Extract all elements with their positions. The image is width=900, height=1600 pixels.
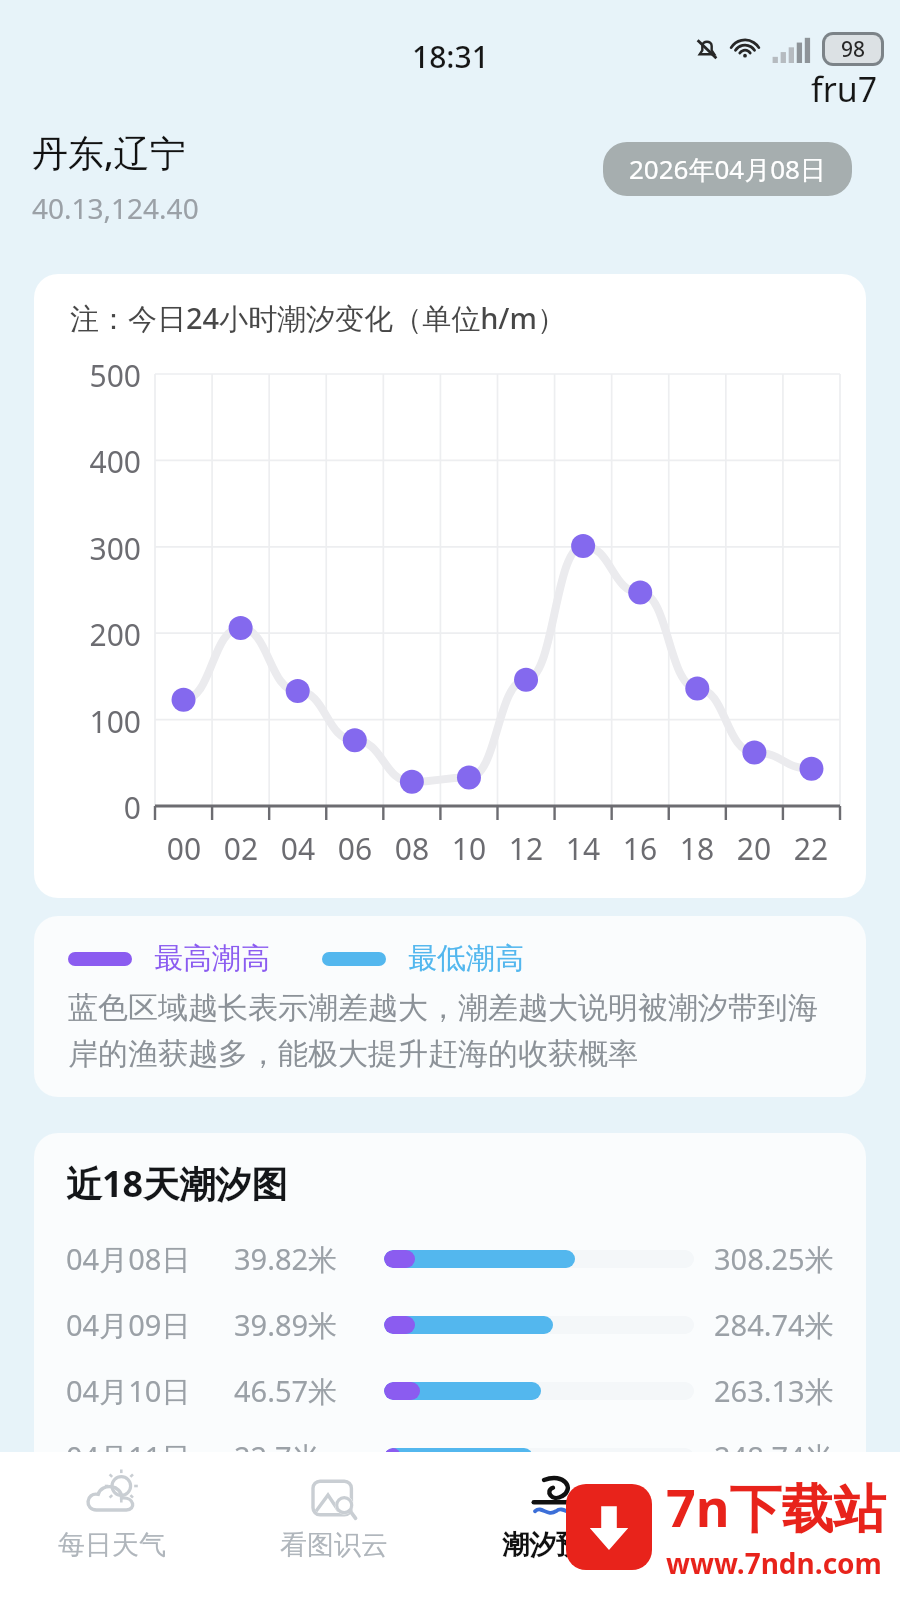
- staticText: 308.25米: [714, 1239, 834, 1279]
- staticText: 0: [34, 787, 141, 828]
- staticText: 98: [841, 35, 866, 63]
- button[interactable]: 04月09日: [34, 1292, 866, 1358]
- staticText: 39.89米: [234, 1305, 376, 1345]
- staticText: 20: [724, 828, 784, 869]
- staticText: 潮汐预警: [502, 1528, 610, 1562]
- staticText: 04月12日: [66, 1503, 218, 1543]
- staticText: 39.82米: [234, 1239, 376, 1279]
- staticText: 16: [610, 828, 670, 869]
- staticText: 57.5米: [234, 1503, 376, 1543]
- button[interactable]: 04月11日: [34, 1424, 866, 1490]
- button[interactable]: 每日天气: [0, 1468, 223, 1600]
- staticText: 04月09日: [66, 1305, 218, 1345]
- button[interactable]: 看图识云: [223, 1468, 445, 1600]
- staticText: 每日天气: [58, 1528, 166, 1562]
- button[interactable]: 潮汐预警: [445, 1468, 667, 1600]
- staticText: 18:31: [412, 36, 489, 77]
- button[interactable]: 04月12日: [34, 1490, 866, 1556]
- staticText: 40.13,124.40: [32, 189, 199, 227]
- staticText: 46.57米: [234, 1371, 376, 1411]
- staticText: 最低潮高: [408, 940, 524, 977]
- staticText: 2026年04月08日: [629, 151, 826, 187]
- staticText: 12: [496, 828, 556, 869]
- staticText: 06: [325, 828, 385, 869]
- staticText: 18: [667, 828, 727, 869]
- staticText: 08: [382, 828, 442, 869]
- staticText: 400: [34, 441, 141, 482]
- staticText: 200: [34, 614, 141, 655]
- button[interactable]: 04月08日: [34, 1226, 866, 1292]
- staticText: 04月10日: [66, 1371, 218, 1411]
- staticText: fru7: [811, 66, 878, 112]
- staticText: 02: [211, 828, 271, 869]
- staticText: 14: [553, 828, 613, 869]
- staticText: 丹东,辽宁: [32, 128, 186, 177]
- other: 每日天气: [82, 1468, 142, 1528]
- staticText: 248.74米: [714, 1437, 834, 1477]
- staticText: www.7ndn.com: [666, 1544, 882, 1582]
- staticText: 100: [34, 701, 141, 742]
- staticText: 22.7米: [234, 1437, 376, 1477]
- staticText: 22: [781, 828, 841, 869]
- staticText: 300: [34, 528, 141, 569]
- staticText: 04: [268, 828, 328, 869]
- other: 潮汐预警: [526, 1468, 586, 1528]
- staticText: 10: [439, 828, 499, 869]
- button[interactable]: 04月10日: [34, 1358, 866, 1424]
- staticText: 04月11日: [66, 1437, 218, 1477]
- staticText: 500: [34, 355, 141, 396]
- staticText: 看图识云: [280, 1528, 388, 1562]
- staticText: 284.74米: [714, 1305, 834, 1345]
- staticText: 近18天潮汐图: [66, 1159, 288, 1208]
- staticText: 263.13米: [714, 1371, 834, 1411]
- staticText: 蓝色区域越长表示潮差越大，潮差越大说明被潮汐带到海岸的渔获越多，能极大提升赶海的…: [68, 989, 842, 1073]
- staticText: 00: [154, 828, 214, 869]
- staticText: 04月08日: [66, 1239, 218, 1279]
- staticText: 7n下载站: [666, 1471, 886, 1542]
- staticText: 最高潮高: [154, 940, 270, 977]
- button[interactable]: 2026年04月08日: [603, 142, 852, 196]
- staticText: 注：今日24小时潮汐变化（单位h/m）: [70, 298, 566, 338]
- other: 看图识云: [304, 1468, 364, 1528]
